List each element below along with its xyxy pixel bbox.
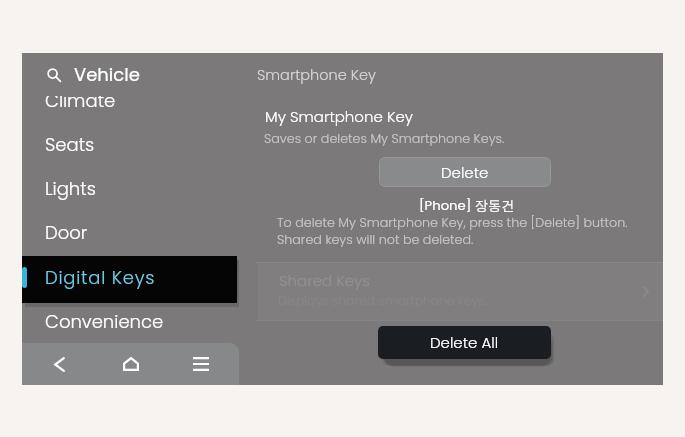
staticText: Lights: [45, 176, 96, 201]
button[interactable]: Digital Keys: [22, 256, 237, 303]
staticText: Saves or deletes My Smartphone Keys.: [264, 130, 505, 148]
staticText: Digital Keys: [45, 265, 156, 290]
button[interactable]: Menu: [164, 343, 237, 385]
staticText: Delete All: [430, 332, 499, 353]
button[interactable]: Back: [23, 343, 96, 385]
button[interactable]: Convenience: [22, 299, 239, 343]
staticText: My Smartphone Key: [265, 106, 413, 127]
button[interactable]: Search Vehicle: [47, 53, 239, 96]
staticText: To delete My Smartphone Key, press the […: [277, 214, 628, 249]
button[interactable]: Climate: [22, 96, 239, 122]
button[interactable]: Door: [22, 210, 239, 254]
staticText: Vehicle: [74, 62, 140, 87]
staticText: Climate: [45, 96, 116, 113]
staticText: Smartphone Key: [257, 65, 376, 85]
button[interactable]: Home: [94, 343, 167, 385]
button[interactable]: Lights: [22, 166, 239, 210]
button[interactable]: Delete All: [378, 326, 551, 359]
staticText: Convenience: [45, 309, 164, 334]
button[interactable]: Seats: [22, 122, 239, 166]
staticText: Delete: [441, 162, 489, 183]
staticText: Door: [45, 220, 88, 245]
staticText: Seats: [45, 132, 95, 157]
staticText: Shared Keys: [279, 270, 370, 291]
staticText: [Phone] 장동건: [419, 196, 515, 214]
button[interactable]: Delete: [379, 157, 551, 187]
